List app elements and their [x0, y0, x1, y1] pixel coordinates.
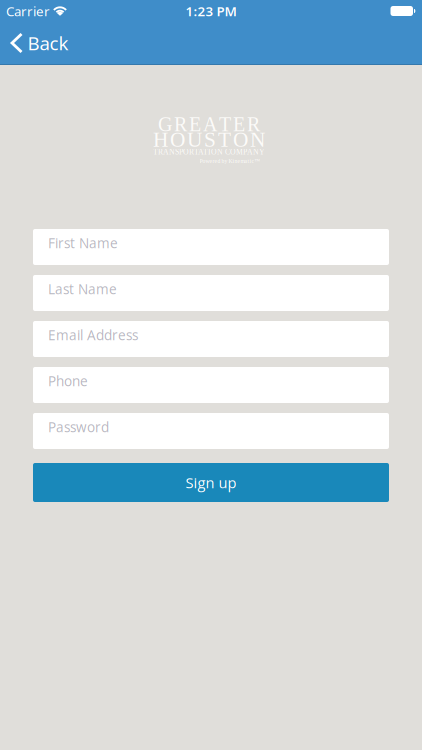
- button[interactable]: Back: [0, 31, 68, 56]
- button[interactable]: Phone: [33, 367, 389, 403]
- staticText: Password: [48, 418, 109, 436]
- staticText: Back: [27, 31, 68, 55]
- button[interactable]: Password: [33, 413, 389, 449]
- staticText: G R E A T E R: [158, 113, 260, 135]
- staticText: Carrier: [6, 2, 50, 20]
- staticText: Powered by Kinematic™: [199, 158, 260, 164]
- staticText: Email Address: [48, 326, 138, 344]
- button[interactable]: Last Name: [33, 275, 389, 311]
- staticText: First Name: [48, 234, 118, 252]
- staticText: 1:23 PM: [185, 2, 236, 20]
- staticText: Last Name: [48, 280, 117, 298]
- staticText: H O U S T O N: [153, 128, 265, 151]
- button[interactable]: Sign up: [33, 463, 389, 502]
- staticText: TRANSPORTATION COMPANY: [153, 148, 265, 156]
- staticText: Sign up: [185, 472, 236, 492]
- staticText: Phone: [48, 372, 88, 390]
- button[interactable]: Email Address: [33, 321, 389, 357]
- button[interactable]: First Name: [33, 229, 389, 265]
